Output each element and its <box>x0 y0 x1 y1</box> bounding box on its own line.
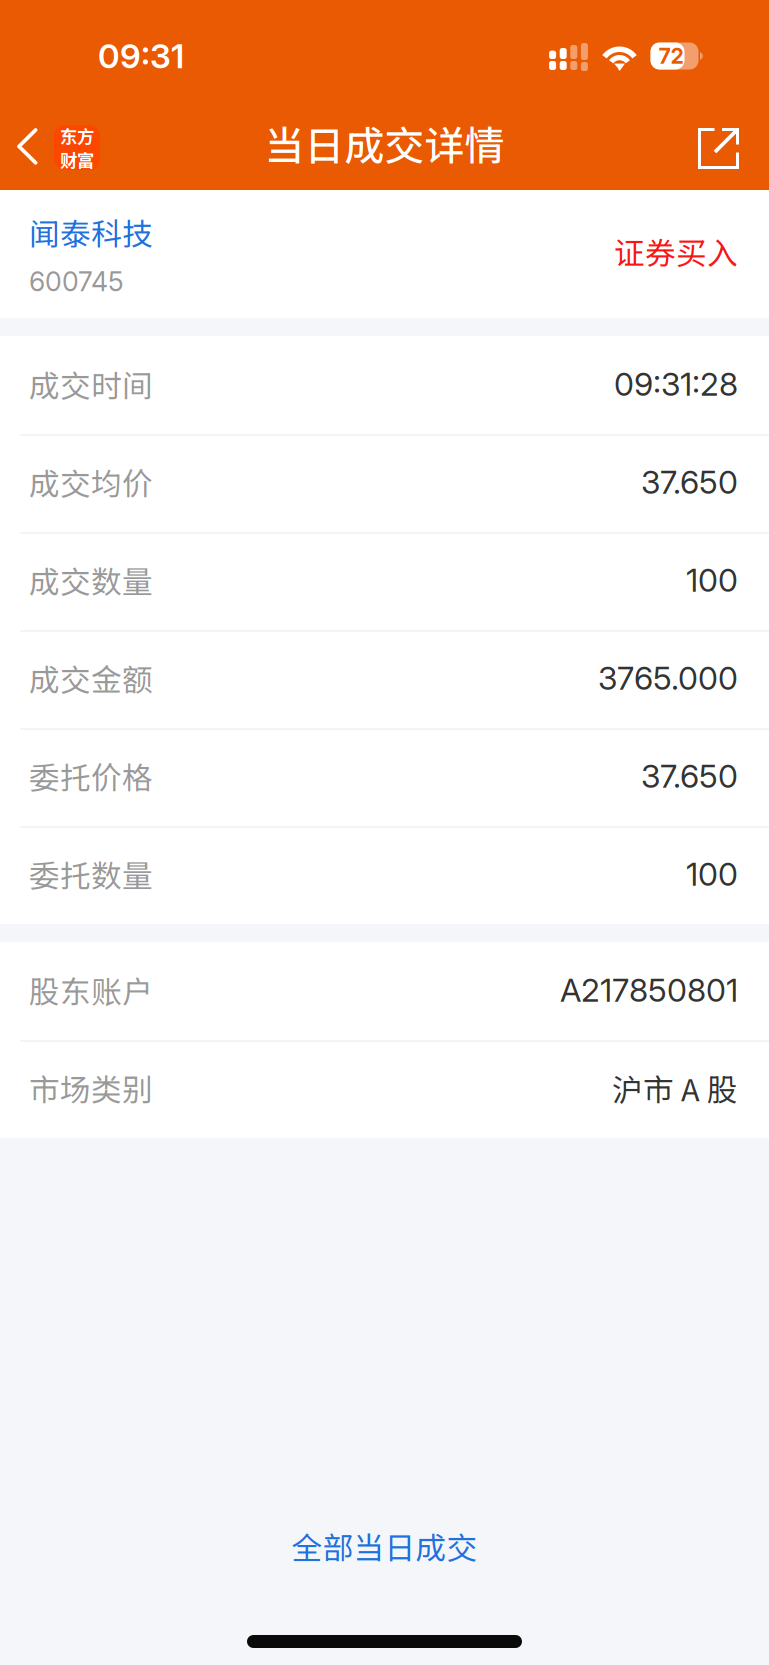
staticText: 全部当日成交 <box>291 1524 477 1568</box>
staticText: 37.650 <box>641 757 738 795</box>
staticText: 财富 <box>60 147 94 172</box>
staticText: 3765.000 <box>598 659 738 697</box>
staticText: 沪市 A 股 <box>612 1066 738 1110</box>
staticText: 600745 <box>29 265 124 298</box>
staticText: 委托数量 <box>29 852 153 896</box>
staticText: 09:31:28 <box>614 365 738 403</box>
staticText: A217850801 <box>560 971 738 1009</box>
staticText: 100 <box>686 561 738 599</box>
staticText: 成交数量 <box>29 558 153 602</box>
button[interactable]: Back <box>0 102 110 184</box>
staticText: 东方 <box>60 123 94 148</box>
staticText: 闻泰科技 <box>29 210 153 254</box>
staticText: 09:31 <box>98 36 184 76</box>
staticText: 股东账户 <box>29 968 153 1012</box>
staticText: 成交时间 <box>29 362 153 406</box>
staticText: 100 <box>686 855 738 893</box>
staticText: 委托价格 <box>29 754 153 798</box>
staticText: 市场类别 <box>29 1066 153 1110</box>
staticText: 72 <box>658 43 683 69</box>
button[interactable]: 全部当日成交 <box>251 1515 517 1577</box>
staticText: 当日成交详情 <box>264 114 504 172</box>
staticText: 成交金额 <box>29 656 153 700</box>
staticText: 证券买入 <box>614 229 738 273</box>
button[interactable]: Share <box>684 102 754 184</box>
staticText: 37.650 <box>641 463 738 501</box>
staticText: 成交均价 <box>29 460 153 504</box>
